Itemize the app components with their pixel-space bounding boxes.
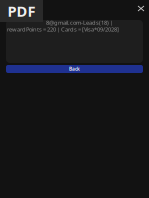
staticText: Back <box>69 66 80 72</box>
staticText: 8@gmail.com-Leads(18) | <box>46 18 113 26</box>
button[interactable]: Back <box>0 65 149 73</box>
button[interactable]: Close <box>132 0 149 17</box>
staticText: rewardPoints = 220 | Cards = [Visa*09/20… <box>7 25 119 33</box>
staticText: PDF <box>7 1 35 21</box>
